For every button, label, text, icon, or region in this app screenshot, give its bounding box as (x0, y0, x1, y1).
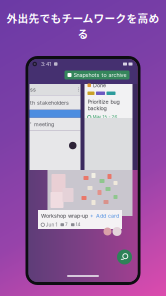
staticText: Jun 1 (45, 222, 57, 227)
staticText: May 15 - 26 (92, 114, 117, 120)
staticText: る (77, 25, 88, 41)
staticText: Snapshots to archive (73, 72, 126, 78)
button[interactable]: ' meeting (29, 118, 80, 131)
staticText: ' meeting (30, 121, 54, 128)
staticText: 3:41 (41, 61, 51, 67)
staticText: 外出先でもチームワークを高め (6, 10, 159, 25)
staticText: Done (93, 82, 106, 89)
button[interactable]: Search (116, 249, 132, 265)
staticText: th stakeholders (30, 100, 69, 106)
button[interactable]: th stakeholders (29, 96, 80, 110)
staticText: 14 (75, 222, 80, 227)
staticText: + Add card (90, 212, 119, 219)
staticText: ss (30, 86, 36, 93)
button[interactable]: Snapshots to archive (64, 70, 129, 79)
staticText: Prioritize bug backlog (87, 98, 119, 111)
staticText: Workshop wrap-up (41, 212, 88, 219)
button[interactable]: + Add card (90, 212, 119, 219)
staticText: 7 (65, 222, 68, 227)
